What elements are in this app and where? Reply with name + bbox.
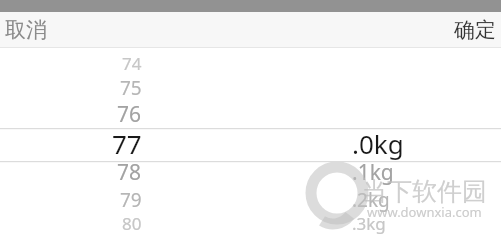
staticText: 80 bbox=[122, 212, 142, 234]
button[interactable]: 确定 bbox=[444, 13, 501, 47]
button[interactable]: .2kg bbox=[352, 187, 390, 215]
staticText: 当下软件园 bbox=[362, 176, 487, 207]
staticText: www.downxia.com bbox=[367, 203, 482, 221]
staticText: 75 bbox=[120, 75, 142, 101]
button[interactable]: .3kg bbox=[352, 212, 386, 234]
staticText: 78 bbox=[117, 158, 142, 187]
staticText: 74 bbox=[122, 52, 142, 75]
staticText: .3kg bbox=[352, 212, 386, 234]
staticText: .0kg bbox=[352, 126, 404, 161]
staticText: 79 bbox=[120, 187, 142, 213]
button[interactable]: 取消 bbox=[0, 13, 57, 47]
staticText: .1kg bbox=[352, 158, 394, 187]
staticText: 76 bbox=[117, 100, 142, 129]
button[interactable]: 78 bbox=[117, 158, 142, 188]
button[interactable]: .1kg bbox=[352, 158, 394, 188]
button[interactable]: .0kg bbox=[352, 126, 404, 164]
staticText: 73 bbox=[125, 33, 142, 52]
staticText: 确定 bbox=[454, 17, 496, 43]
staticText: 取消 bbox=[5, 17, 47, 43]
button[interactable]: 77 bbox=[112, 126, 142, 164]
button[interactable]: 79 bbox=[120, 187, 142, 215]
button[interactable]: 75 bbox=[120, 75, 142, 103]
button[interactable]: 74 bbox=[122, 52, 142, 77]
button[interactable]: 76 bbox=[117, 100, 142, 130]
button[interactable]: 80 bbox=[122, 212, 142, 234]
staticText: .2kg bbox=[352, 187, 390, 213]
button[interactable]: 73 bbox=[125, 33, 142, 53]
staticText: 77 bbox=[112, 126, 142, 161]
